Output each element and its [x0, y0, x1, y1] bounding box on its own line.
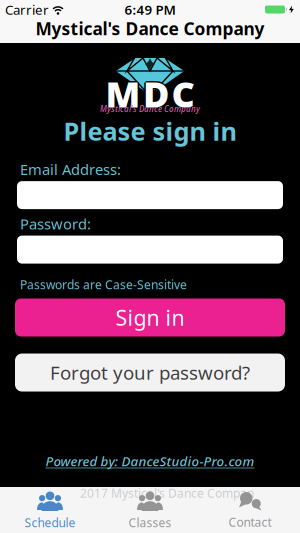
button[interactable]: Powered by: DanceStudio-Pro.com	[45, 452, 254, 470]
staticText: Please sign in	[63, 114, 236, 148]
staticText: Contact	[228, 514, 271, 530]
staticText: Classes	[128, 514, 171, 530]
button[interactable]: Schedule	[0, 487, 100, 533]
staticText: MDC	[105, 71, 194, 119]
staticText: Forgot your password?	[50, 360, 250, 385]
staticText: Mystical's Dance Company	[35, 17, 264, 40]
button[interactable]: Contact	[200, 487, 300, 533]
staticText: MDC	[105, 68, 194, 116]
staticText: Mystical's Dance Company	[100, 104, 200, 114]
staticText: Password:	[20, 214, 91, 234]
staticText: Schedule	[24, 514, 75, 530]
button[interactable]: Email Address	[0, 181, 300, 209]
button[interactable]: Classes	[100, 487, 200, 533]
staticText: Email Address:	[20, 160, 121, 179]
staticText: MDC	[104, 70, 193, 117]
button[interactable]: Password	[0, 236, 300, 264]
staticText: 6:49 PM	[124, 1, 175, 18]
staticText: 2017 Mystical's Dance Compan	[80, 485, 254, 501]
staticText: Sign in	[115, 303, 184, 332]
button[interactable]: Forgot your password?	[0, 353, 300, 391]
button[interactable]: Sign in	[0, 298, 300, 336]
staticText: MDC	[105, 70, 194, 117]
staticText: Powered by: DanceStudio-Pro.com	[45, 452, 254, 470]
staticText: MDC	[107, 70, 196, 117]
staticText: Carrier	[5, 1, 49, 18]
staticText: Passwords are Case-Sensitive	[20, 277, 187, 292]
